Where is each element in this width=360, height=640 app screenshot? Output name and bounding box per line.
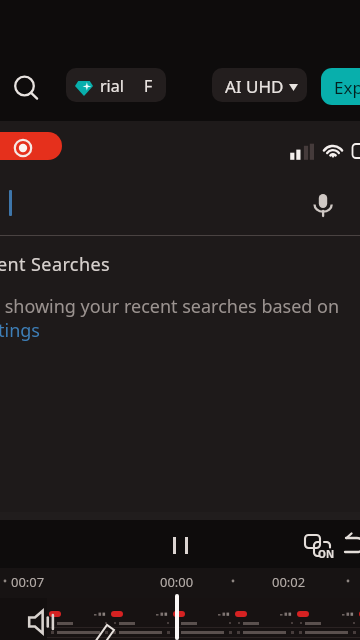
button[interactable]: rial	[66, 68, 166, 102]
staticText: ON	[318, 547, 335, 561]
button[interactable]: Keyframe on	[300, 530, 334, 560]
button[interactable]: Search	[4, 65, 46, 107]
staticText: showing your recent searches based on	[0, 294, 340, 319]
staticText: 00:07	[11, 573, 45, 591]
button[interactable]: Voice search	[308, 186, 338, 224]
button[interactable]: Recording	[0, 132, 62, 160]
button[interactable]: Pause	[165, 529, 195, 553]
button[interactable]: Volume	[26, 606, 58, 638]
button[interactable]: AI UHD	[212, 68, 307, 102]
staticText: rial	[100, 75, 124, 97]
staticText: Exp	[334, 76, 360, 99]
staticText: 00:00	[160, 573, 194, 591]
staticText: AI UHD	[225, 75, 284, 98]
staticText: ent Searches	[0, 252, 110, 277]
staticText: F	[144, 75, 153, 97]
button[interactable]: Edit clip	[94, 622, 116, 640]
button[interactable]: Undo	[340, 530, 360, 560]
staticText: 00:02	[272, 573, 306, 591]
button[interactable]: tings	[0, 318, 40, 343]
button[interactable]: Exp	[321, 68, 360, 105]
